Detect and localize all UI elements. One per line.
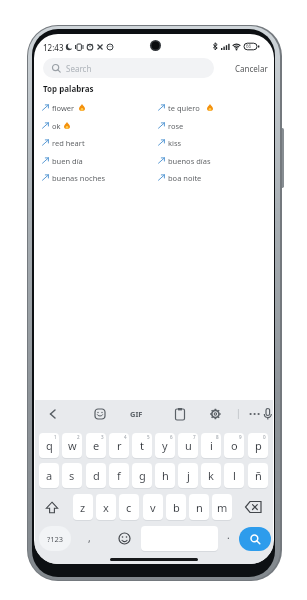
staticText: c [126,500,132,515]
button[interactable]: buenas noches [42,172,96,182]
button[interactable]: l [224,463,244,488]
staticText: v [150,500,156,515]
staticText: , [88,531,91,545]
staticText: buen día [52,156,83,166]
staticText: k [208,468,214,483]
button[interactable]: z [73,494,93,520]
button[interactable]: ?123 [39,526,71,551]
button[interactable]: v [143,494,163,520]
button[interactable] [239,527,271,551]
staticText: s [69,468,75,483]
staticText: 7 [193,434,196,440]
button[interactable]: k [201,463,221,488]
staticText: l [233,468,236,483]
button[interactable]: x [96,494,116,520]
staticText: boa noite [168,173,202,183]
staticText: 8 [216,434,219,440]
button[interactable]: buen día [42,155,73,165]
staticText: r [117,438,122,453]
button[interactable] [118,532,131,545]
staticText: 3 [101,434,104,440]
button[interactable] [45,501,59,514]
staticText: 0 [263,434,266,440]
button[interactable]: c [119,494,139,520]
button[interactable]: q [39,433,59,458]
button[interactable]: red heart [42,137,75,147]
staticText: 9 [239,434,242,440]
staticText: o [231,438,238,453]
staticText: te quiero [168,103,200,113]
staticText: b [173,500,180,515]
staticText: f [117,468,121,483]
staticText: m [217,500,228,515]
button[interactable]: o [224,433,244,458]
button[interactable]: flower [42,102,65,112]
staticText: y [162,438,168,453]
staticText: z [80,500,86,515]
staticText: i [210,438,213,453]
button[interactable]: r [109,433,129,458]
button[interactable]: e [86,433,106,458]
button[interactable]: Search [43,58,214,78]
button[interactable]: t [132,433,152,458]
staticText: Search [66,63,92,74]
button[interactable]: w [62,433,82,458]
button[interactable]: y [155,433,175,458]
button[interactable]: p [248,433,268,458]
button[interactable]: f [109,463,129,488]
staticText: 4 [124,434,127,440]
button[interactable]: Cancelar [233,58,269,78]
button[interactable]: b [166,494,186,520]
staticText: e [93,438,100,453]
staticText: g [139,468,146,483]
staticText: a [46,468,53,483]
staticText: kiss [168,138,182,148]
staticText: d [93,468,100,483]
button[interactable]: s [62,463,82,488]
staticText: h [162,468,169,483]
button[interactable]: kiss [158,137,172,147]
staticText: n [196,500,203,515]
button[interactable]: rose [158,120,174,130]
staticText: buenos días [168,156,211,166]
button[interactable]: te quiero [158,102,190,112]
staticText: 2 [77,434,80,440]
staticText: GIF [130,409,143,419]
staticText: ok [52,121,61,131]
button[interactable]: h [155,463,175,488]
button[interactable]: buenos días [158,155,201,165]
button[interactable]: boa noite [158,172,192,182]
staticText: 5 [147,434,150,440]
staticText: ?123 [47,534,64,544]
staticText: 6 [170,434,173,440]
button[interactable]: g [132,463,152,488]
button[interactable]: a [39,463,59,488]
staticText: Cancelar [235,63,268,74]
staticText: u [185,438,192,453]
staticText: w [68,438,77,453]
button[interactable]: j [178,463,198,488]
button[interactable]: u [178,433,198,458]
button[interactable]: i [201,433,221,458]
staticText: red heart [52,138,85,148]
button[interactable]: m [212,494,232,520]
staticText: ñ [255,468,262,483]
staticText: p [255,438,262,453]
button[interactable]: d [86,463,106,488]
staticText: q [46,438,53,453]
button[interactable] [37,406,273,422]
staticText: flower [52,103,75,113]
button[interactable]: n [189,494,209,520]
button[interactable]: ok [42,120,51,130]
staticText: 12:43 [43,42,64,53]
staticText: Top palabras [43,83,94,94]
staticText: . [227,528,230,542]
button[interactable] [244,500,264,514]
button[interactable]: ñ [248,463,268,488]
staticText: 66 [246,43,252,49]
staticText: x [103,500,109,515]
staticText: 1 [54,434,57,440]
staticText: buenas noches [52,173,106,183]
staticText: rose [168,121,184,131]
